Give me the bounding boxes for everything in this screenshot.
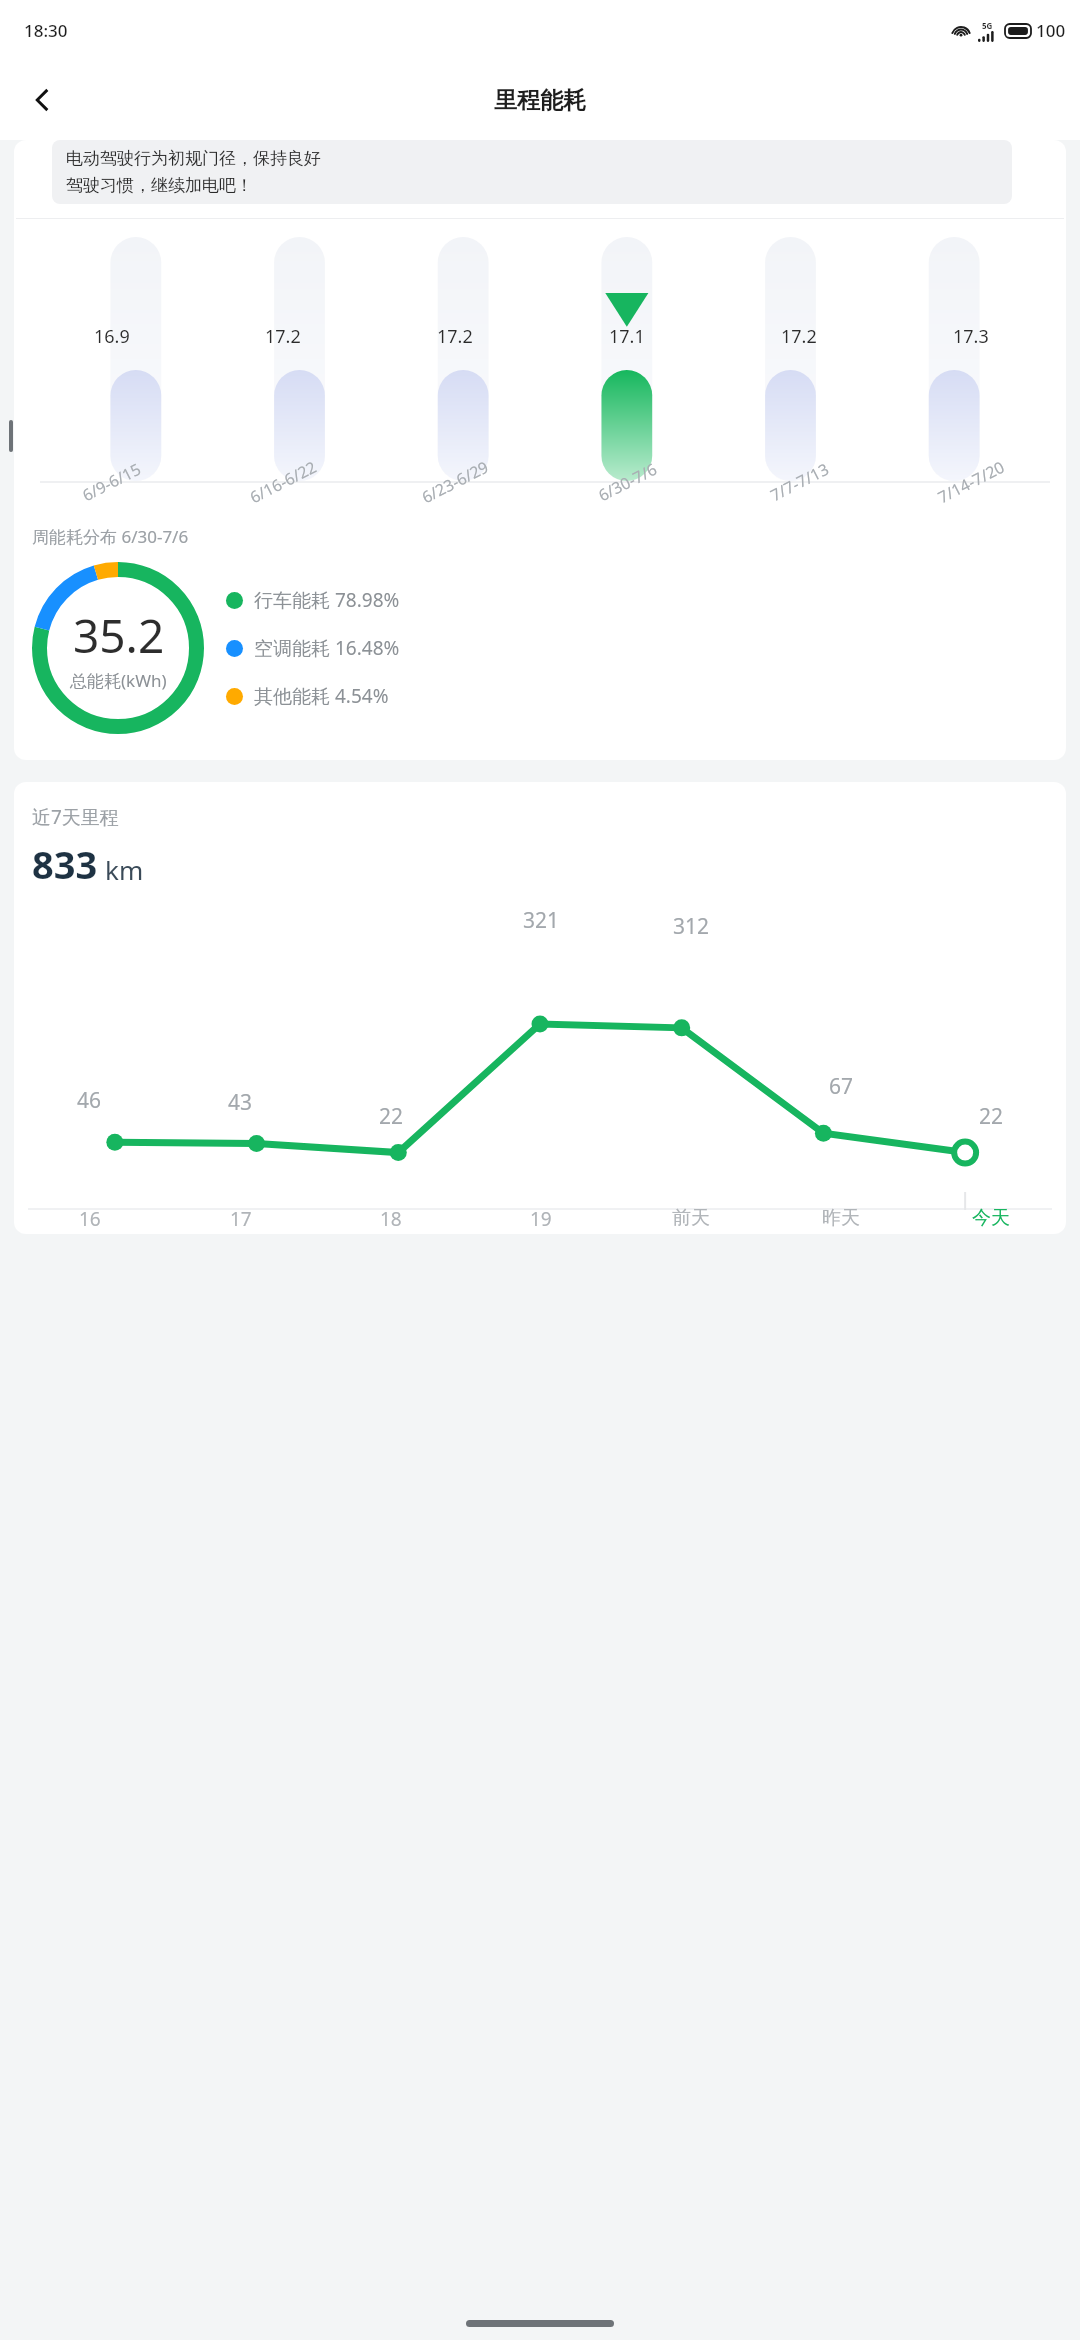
staticText: 空调能耗 16.48% [254,635,400,661]
staticText: 电动驾驶行为初规门径，保持良好 驾驶习惯，继续加电吧！ [66,148,321,196]
staticText: 17.2 [781,324,817,349]
staticText: 22 [979,1102,1004,1131]
staticText: 5G [982,20,993,31]
staticText: 近7天里程 [32,804,119,830]
staticText: 321 [523,906,560,935]
staticText: 16 [79,1206,101,1232]
button[interactable]: Back [14,72,70,128]
staticText: 17 [230,1206,252,1232]
staticText: 35.2 [73,604,165,667]
staticText: 昨天 [822,1206,860,1230]
staticText: 17.2 [437,324,473,349]
staticText: 312 [673,912,710,941]
staticText: 16.9 [94,324,130,349]
staticText: km [105,852,144,887]
staticText: 前天 [672,1206,710,1230]
staticText: 周能耗分布 6/30-7/6 [32,525,189,548]
staticText: 17.1 [609,324,645,349]
staticText: 19 [530,1206,552,1232]
staticText: 7/14-7/20 [934,456,1008,508]
staticText: 17.2 [265,324,301,349]
button[interactable]: 行车能耗 78.98% [226,587,400,613]
staticText: 7/7-7/13 [766,458,832,506]
staticText: 6/23-6/29 [418,456,492,508]
staticText: 总能耗(kWh) [70,669,167,692]
staticText: 今天 [972,1206,1010,1230]
staticText: 67 [829,1072,854,1101]
staticText: 6/16-6/22 [246,456,320,508]
staticText: 833 [32,838,98,890]
staticText: 其他能耗 4.54% [254,683,389,709]
staticText: 里程能耗 [494,86,586,115]
staticText: 18 [380,1206,402,1232]
staticText: 18:30 [24,19,68,42]
staticText: 100 [1036,19,1066,42]
button[interactable]: 空调能耗 16.48% [226,635,400,661]
staticText: 46 [77,1086,102,1115]
staticText: 6/30-7/6 [594,458,660,506]
staticText: 行车能耗 78.98% [254,587,400,613]
button[interactable]: 其他能耗 4.54% [226,683,389,709]
staticText: 6/9-6/15 [78,458,144,506]
staticText: 22 [379,1102,404,1131]
staticText: 17.3 [953,324,989,349]
staticText: 43 [228,1088,253,1117]
